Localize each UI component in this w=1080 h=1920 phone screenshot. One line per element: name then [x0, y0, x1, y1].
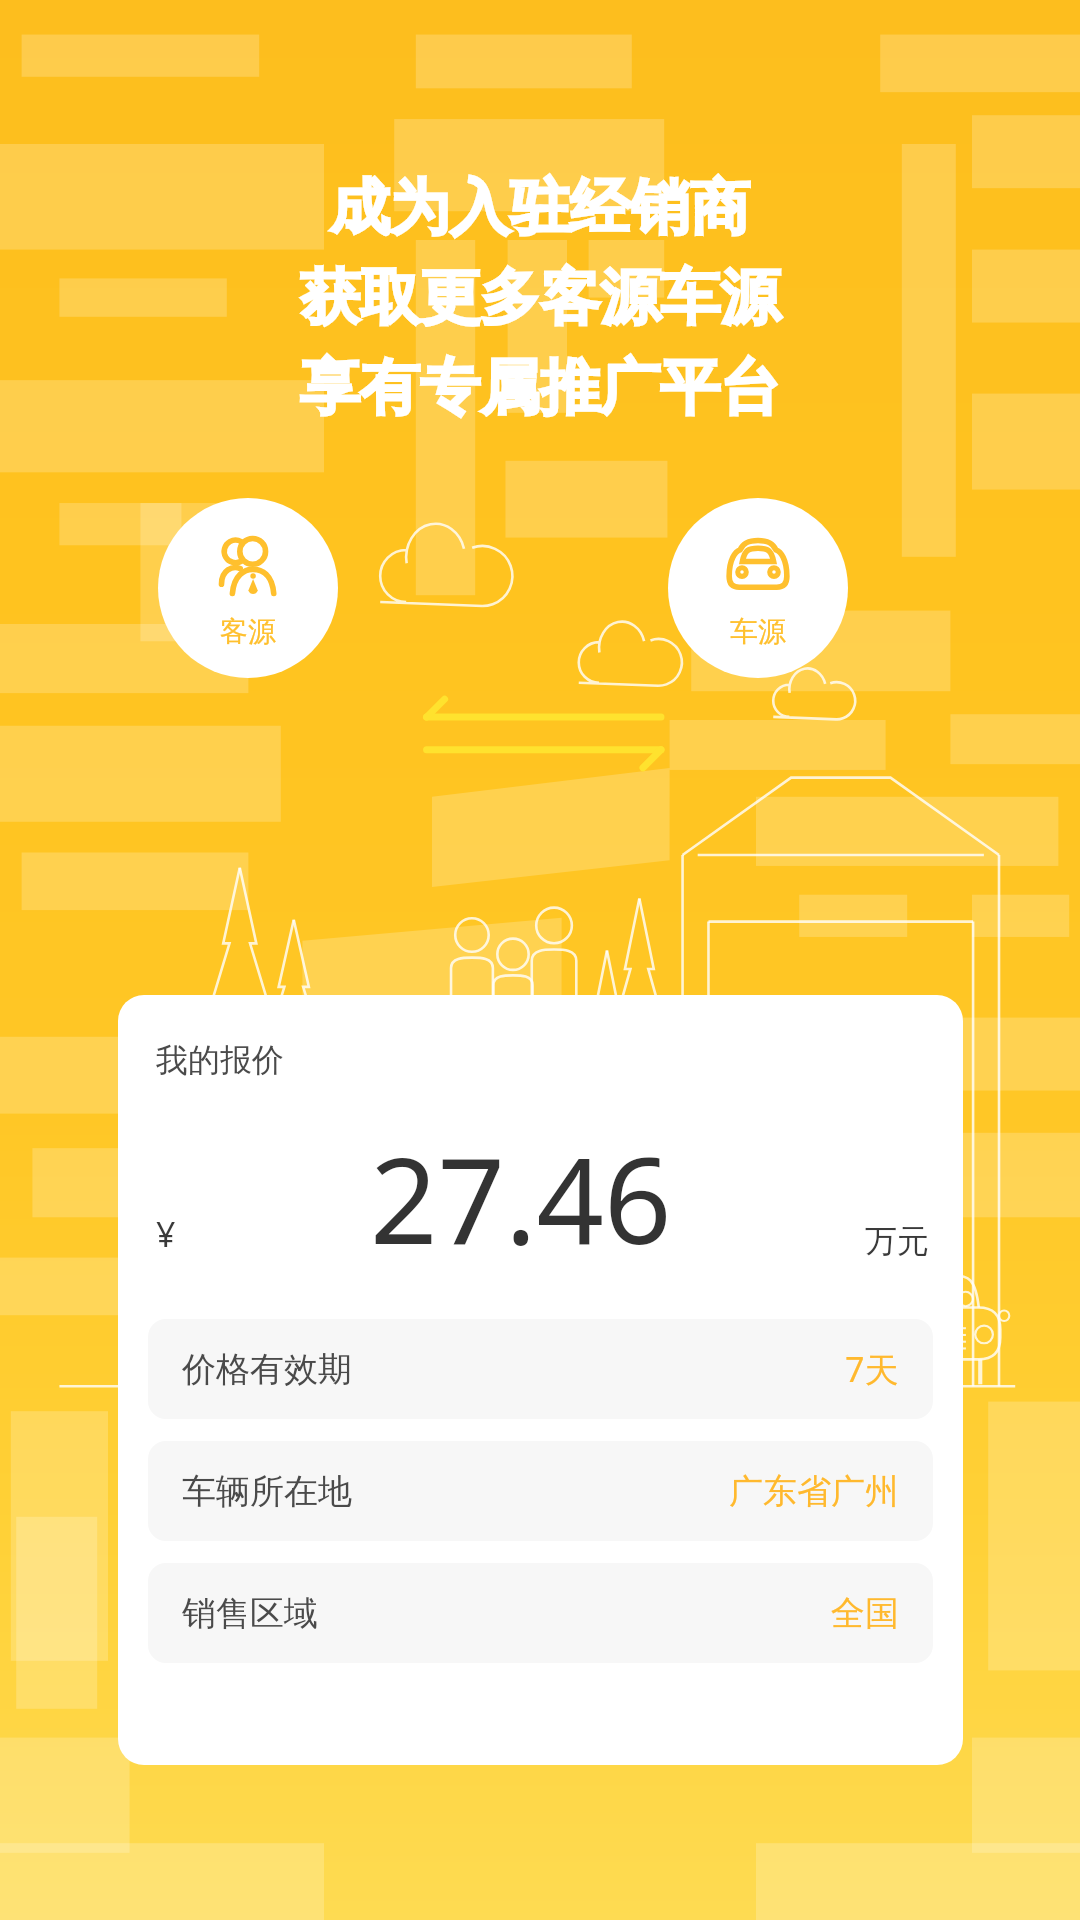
- staticText: 成为入驻经销商: [330, 170, 750, 246]
- staticText: 销售区域: [182, 1592, 318, 1635]
- staticText: ¥: [156, 1211, 176, 1257]
- staticText: 车辆所在地: [182, 1470, 352, 1513]
- staticText: 车源: [730, 614, 786, 649]
- staticText: 价格有效期: [182, 1348, 352, 1391]
- staticText: 万元: [865, 1221, 929, 1261]
- button[interactable]: 车辆所在地: [148, 1441, 933, 1541]
- button[interactable]: 客源: [158, 498, 338, 678]
- staticText: 27.46: [370, 1118, 672, 1279]
- button[interactable]: 车源: [668, 498, 848, 678]
- button[interactable]: 价格有效期: [148, 1319, 933, 1419]
- staticText: 我的报价: [156, 1040, 284, 1080]
- button[interactable]: 销售区域: [148, 1563, 933, 1663]
- staticText: 7天: [845, 1346, 899, 1392]
- staticText: 客源: [220, 614, 276, 649]
- staticText: 全国: [831, 1592, 899, 1635]
- staticText: 获取更多客源车源: [300, 260, 780, 336]
- staticText: 广东省广州: [729, 1470, 899, 1513]
- staticText: 享有专属推广平台: [300, 350, 780, 426]
